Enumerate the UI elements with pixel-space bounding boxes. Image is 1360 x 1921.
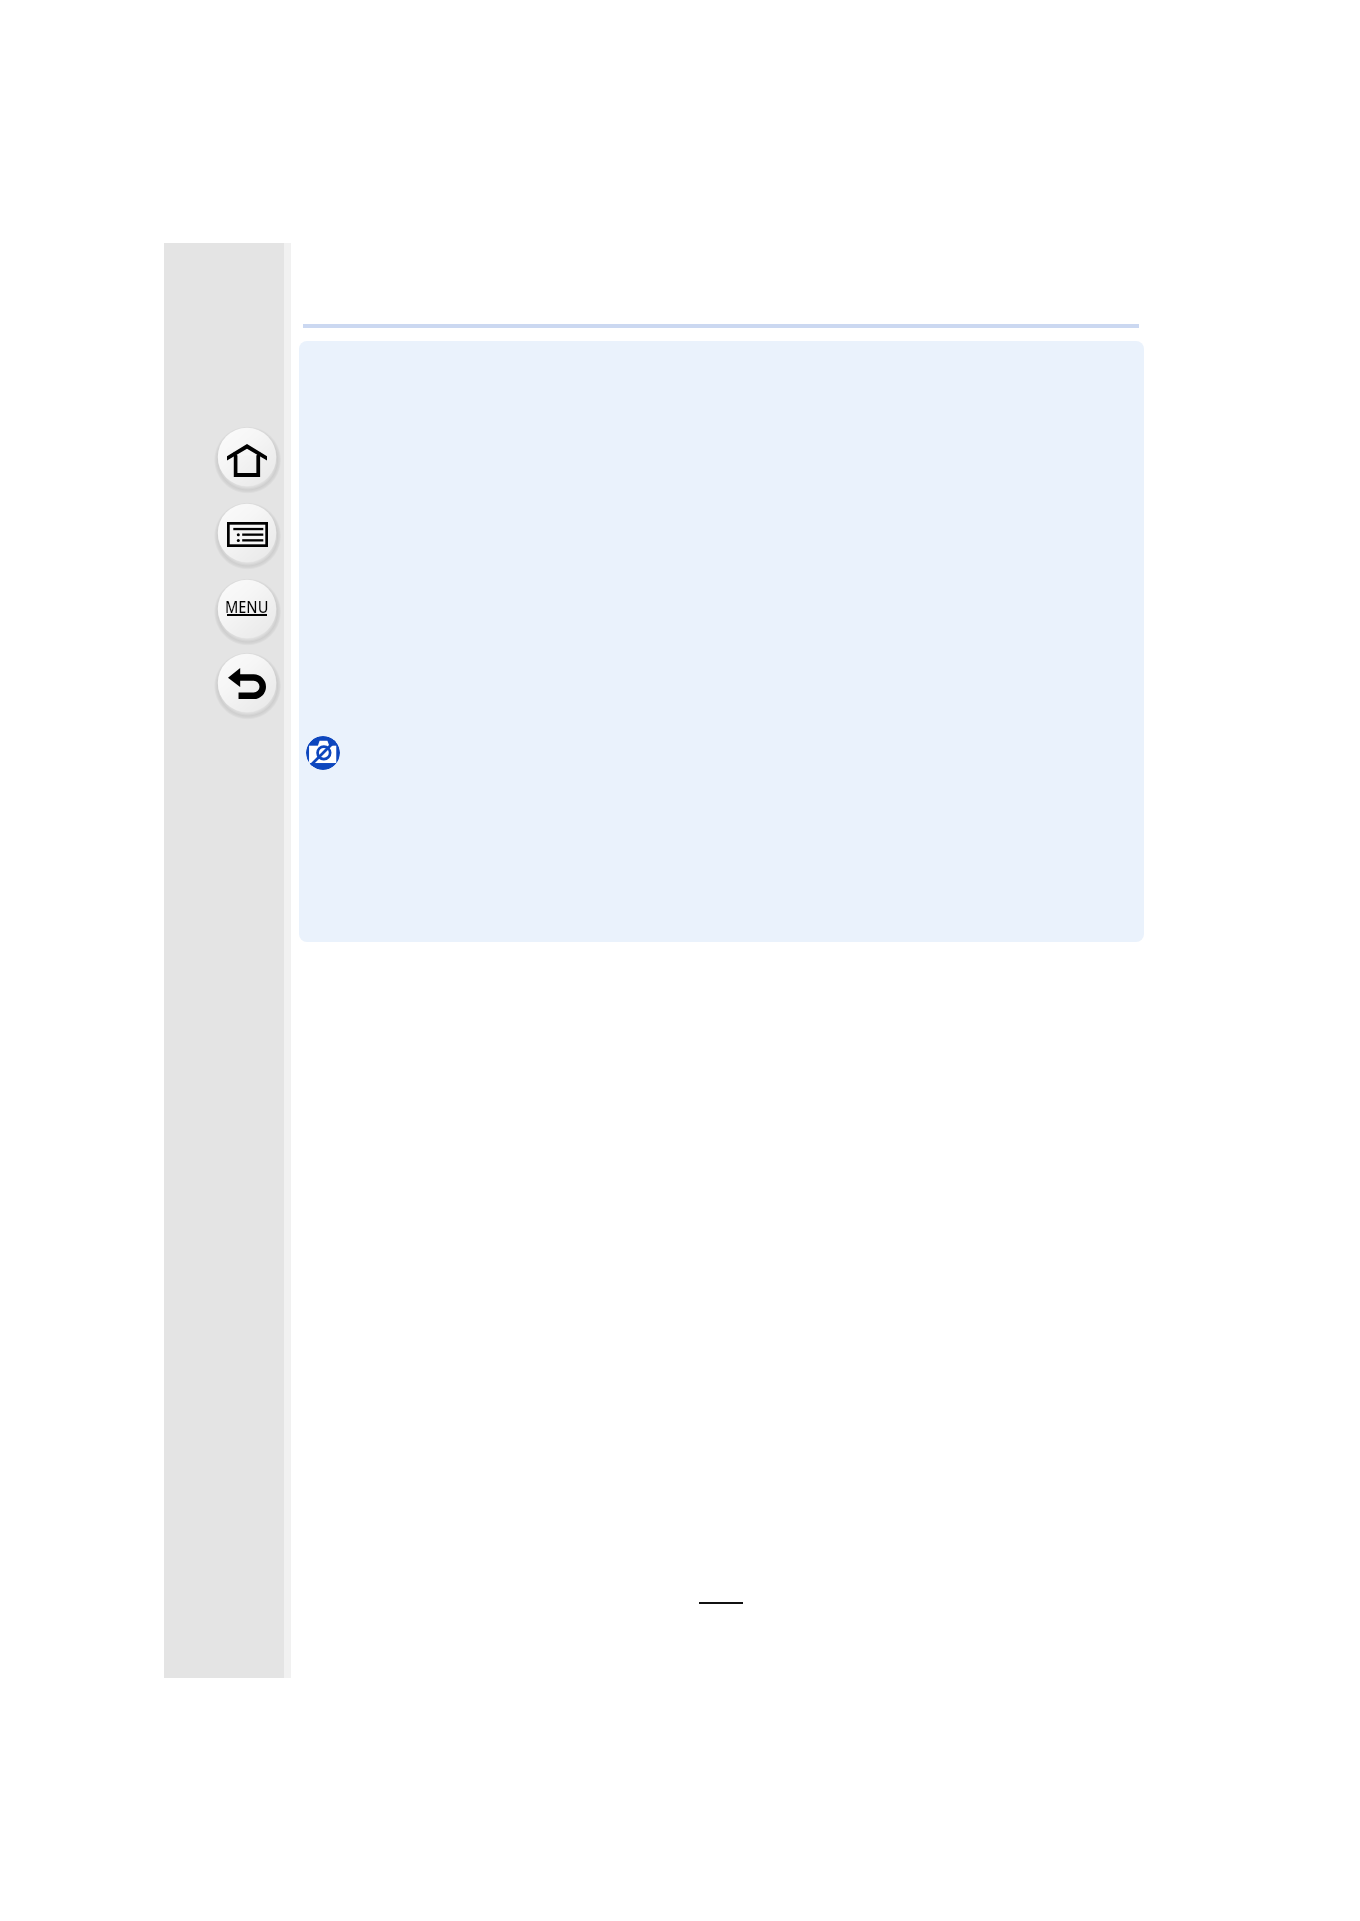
staticText: MENU	[225, 596, 269, 618]
other: Recording not available	[306, 736, 340, 770]
button[interactable]: Menu	[217, 579, 277, 639]
button[interactable]: Home	[217, 427, 277, 487]
button[interactable]: Back	[217, 653, 277, 713]
button[interactable]: Recording information	[217, 503, 277, 563]
